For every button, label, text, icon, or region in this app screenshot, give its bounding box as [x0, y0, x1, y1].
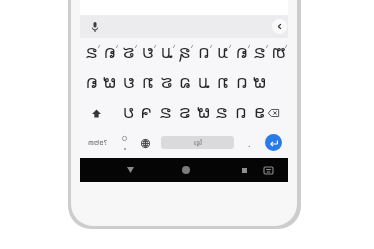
staticText: ຮ — [161, 72, 173, 92]
button[interactable]: ຄ — [82, 68, 101, 98]
staticText: ຜ — [197, 102, 210, 122]
staticText: ຍ — [123, 72, 135, 92]
staticText: ຂ — [86, 42, 98, 62]
staticText: ຄ — [236, 42, 248, 62]
button[interactable]: Enter — [265, 134, 282, 151]
button[interactable]: ມ — [157, 38, 176, 68]
button[interactable]: Shift — [80, 98, 113, 128]
staticText: ຮ — [123, 42, 135, 62]
button[interactable]: ຄ — [232, 38, 251, 68]
staticText: ຈ — [141, 102, 152, 122]
button[interactable]: Change language — [134, 128, 156, 158]
button[interactable]: ຜ — [100, 68, 119, 98]
button[interactable]: ຮ — [157, 68, 176, 98]
button[interactable]: ກ — [213, 68, 232, 98]
staticText: ດ — [198, 42, 210, 62]
button[interactable]: ດ — [232, 68, 251, 98]
staticText: ຄ — [104, 42, 116, 62]
staticText: ບ — [123, 102, 134, 122]
button[interactable]: ອ — [250, 98, 269, 128]
staticText: ?១២៣ — [87, 138, 107, 148]
button[interactable]: ບ — [119, 98, 138, 128]
staticText: ມ — [198, 72, 210, 92]
button[interactable]: ກ — [138, 68, 157, 98]
button[interactable]: ລ — [175, 68, 194, 98]
button[interactable]: ຜ — [250, 68, 269, 98]
button[interactable]: Recents — [233, 158, 255, 182]
staticText: ຣ — [179, 102, 191, 122]
button[interactable]: Switch keyboard — [257, 158, 279, 182]
staticText: ກ — [142, 72, 154, 92]
staticText: ດ — [235, 102, 247, 122]
button[interactable]: Voice input — [84, 15, 106, 38]
staticText: ຂ — [216, 102, 228, 122]
staticText: ຄ — [86, 72, 98, 92]
button[interactable]: ດ — [231, 98, 250, 128]
button[interactable]: ຊ — [175, 38, 194, 68]
staticText: ຊ — [179, 42, 191, 62]
button[interactable]: ມ — [194, 68, 213, 98]
button[interactable]: ຣ — [175, 98, 194, 128]
staticText: ຜ — [103, 72, 116, 92]
button[interactable]: ຜ — [194, 98, 213, 128]
staticText: ນ — [217, 42, 229, 62]
button[interactable]: ຂ — [156, 98, 175, 128]
button[interactable]: ខ្មែរ — [161, 136, 234, 149]
staticText: ຂ — [160, 102, 172, 122]
button[interactable]: Expand suggestions — [272, 19, 287, 34]
button[interactable]: ຄ — [100, 38, 119, 68]
staticText: ດ — [236, 72, 248, 92]
button[interactable]: ຫ — [269, 38, 288, 68]
button[interactable]: Home — [175, 158, 197, 182]
button[interactable]: Back — [119, 158, 141, 182]
button[interactable]: ຍ — [119, 68, 138, 98]
staticText: ມ — [161, 42, 173, 62]
staticText: ກ — [217, 72, 229, 92]
staticText: ຫ — [272, 42, 286, 62]
button[interactable]: Emoji — [113, 128, 135, 158]
button[interactable]: ດ — [194, 38, 213, 68]
button[interactable]: ຍ — [138, 38, 157, 68]
button[interactable]: ຮ — [119, 38, 138, 68]
button[interactable]: ຂ — [212, 98, 231, 128]
button[interactable]: . — [239, 128, 259, 158]
staticText: ລ — [179, 72, 191, 92]
button[interactable]: ຈ — [137, 98, 156, 128]
staticText: ຍ — [142, 42, 154, 62]
button[interactable]: Backspace — [257, 98, 289, 128]
staticText: ខ្មែរ — [194, 138, 202, 147]
button[interactable]: ຂ — [250, 38, 269, 68]
button[interactable]: ນ — [213, 38, 232, 68]
staticText: . — [248, 137, 251, 149]
staticText: ຜ — [253, 72, 266, 92]
staticText: ອ — [254, 102, 265, 122]
staticText: ຂ — [254, 42, 266, 62]
button[interactable]: ຂ — [82, 38, 101, 68]
button[interactable]: ?១២៣ — [82, 128, 112, 158]
